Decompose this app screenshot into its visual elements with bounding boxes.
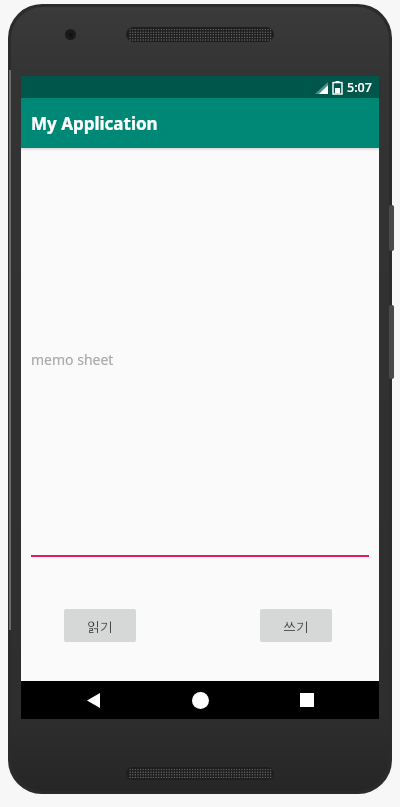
button[interactable]: Home <box>178 681 222 719</box>
button[interactable]: 쓰기 <box>260 609 332 642</box>
button[interactable]: Recent apps <box>285 681 329 719</box>
staticText: 읽기 <box>87 618 113 634</box>
button[interactable]: 읽기 <box>64 609 136 642</box>
staticText: 쓰기 <box>283 618 309 634</box>
staticText: 5:07 <box>347 79 372 96</box>
button[interactable]: Back <box>71 681 115 719</box>
staticText: memo sheet <box>31 350 114 369</box>
staticText: My Application <box>31 112 158 135</box>
